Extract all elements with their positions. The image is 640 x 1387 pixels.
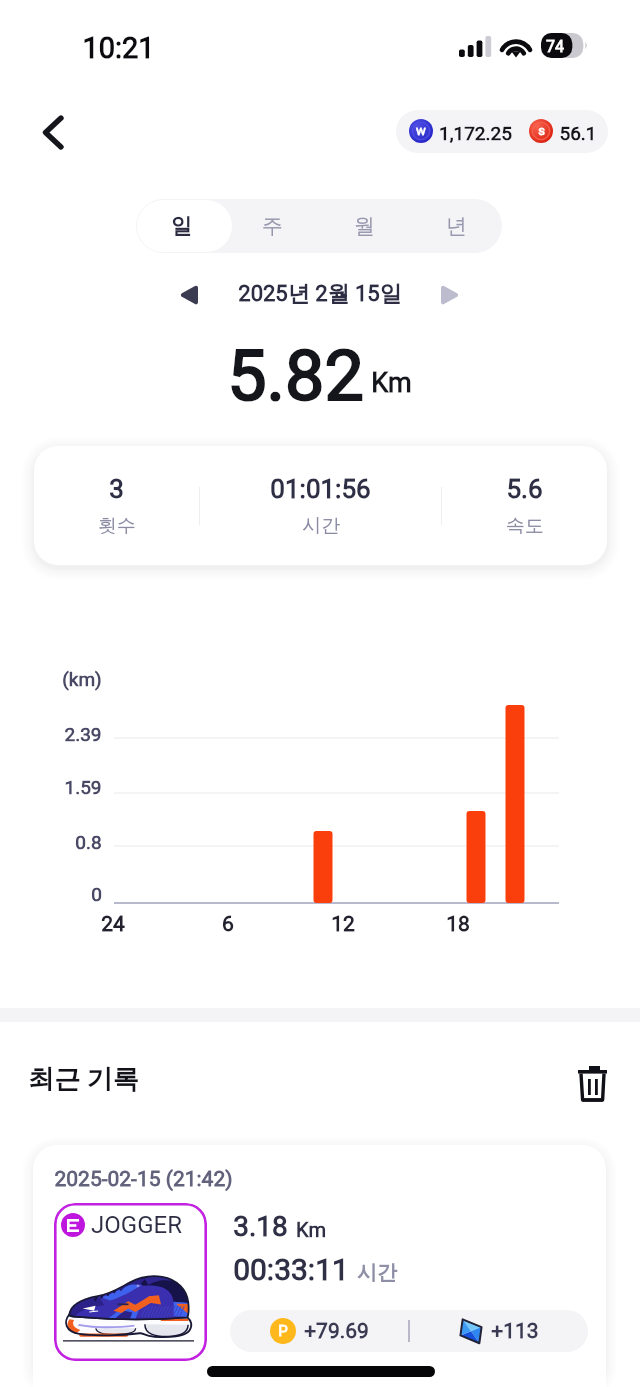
button[interactable]: Next day: [427, 272, 473, 318]
button[interactable]: 주: [227, 199, 318, 253]
staticText: 시간: [357, 1260, 397, 1285]
button[interactable]: 01:01:56: [200, 474, 441, 538]
staticText: (km): [62, 668, 102, 690]
staticText: 3.18: [233, 1210, 288, 1243]
staticText: 5.82: [227, 335, 364, 417]
staticText: 최근 기록: [28, 1063, 139, 1096]
staticText: P: [278, 1322, 288, 1340]
staticText: s: [538, 123, 545, 138]
staticText: 속도: [506, 514, 544, 538]
staticText: Km: [296, 1218, 326, 1241]
staticText: JOGGER: [91, 1211, 182, 1239]
staticText: 18: [446, 912, 470, 937]
button[interactable]: 월: [318, 199, 410, 253]
staticText: 12: [331, 912, 355, 937]
staticText: 74: [546, 37, 564, 56]
staticText: 3: [109, 474, 124, 504]
staticText: 주: [262, 213, 283, 239]
button[interactable]: w: [396, 110, 608, 153]
button[interactable]: Previous day: [166, 272, 212, 318]
staticText: +113: [491, 1319, 539, 1344]
staticText: 시간: [302, 514, 340, 538]
button[interactable]: P: [230, 1310, 588, 1352]
button[interactable]: Delete: [568, 1056, 618, 1106]
staticText: 0.8: [75, 831, 102, 853]
staticText: 0: [91, 883, 102, 905]
button[interactable]: 2025-02-15 (21:42): [33, 1145, 606, 1387]
button[interactable]: 년: [410, 199, 502, 253]
staticText: 2025-02-15 (21:42): [54, 1167, 233, 1192]
button[interactable]: 3: [34, 474, 199, 538]
staticText: 00:33:11: [233, 1252, 349, 1287]
staticText: 56.1: [559, 122, 597, 144]
staticText: 5.6: [506, 474, 543, 504]
staticText: 2025년 2월 15일: [238, 280, 402, 308]
staticText: 24: [101, 912, 125, 937]
staticText: 월: [354, 213, 375, 239]
staticText: 횟수: [98, 514, 136, 538]
staticText: 6: [222, 912, 234, 937]
button[interactable]: 5.6: [442, 474, 607, 538]
button[interactable]: 일: [136, 199, 227, 253]
button[interactable]: Back: [24, 104, 80, 160]
staticText: 1,172.25: [439, 122, 512, 144]
staticText: w: [416, 123, 426, 138]
staticText: 10:21: [82, 31, 155, 65]
staticText: 2.39: [64, 723, 102, 745]
staticText: 년: [446, 213, 467, 239]
staticText: 1.59: [64, 776, 102, 798]
staticText: 01:01:56: [270, 474, 371, 504]
staticText: 일: [171, 213, 192, 239]
staticText: Km: [371, 367, 412, 399]
staticText: +79.69: [304, 1319, 369, 1344]
